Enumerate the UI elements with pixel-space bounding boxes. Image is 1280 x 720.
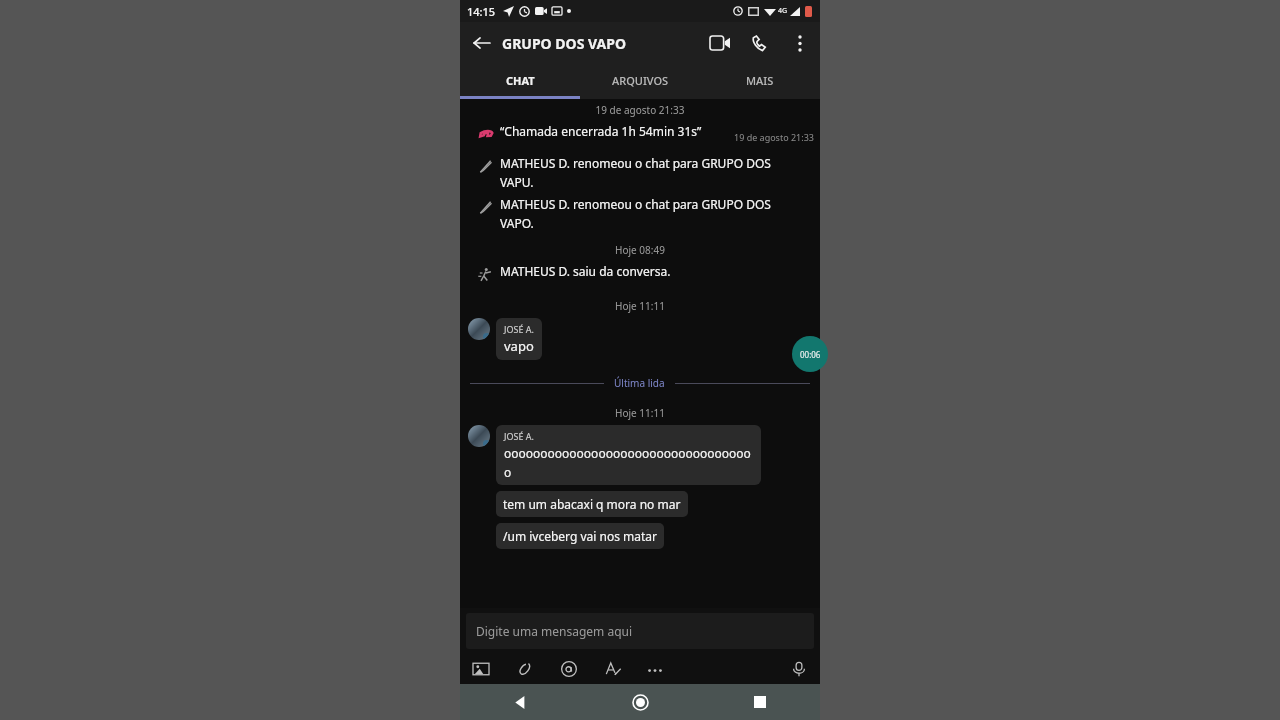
staticText: 14:15 [467,4,496,19]
staticText: 19 de agosto 21:33 [460,103,820,117]
button[interactable]: Voltar [460,22,502,64]
staticText: Hoje 11:11 [460,299,820,313]
staticText: tem um abacaxi q mora no mar [503,496,681,512]
button[interactable]: Mencionar [558,658,580,680]
button[interactable]: Chamada em andamento [792,336,828,372]
button[interactable]: CHAT [460,64,580,96]
button[interactable]: tem um abacaxi q mora no mar [496,491,688,517]
button[interactable]: MAIS [700,64,820,96]
staticText: “Chamada encerrada 1h 54min 31s” [500,123,720,139]
staticText: /um ivceberg vai nos matar [503,528,657,544]
staticText: 19 de agosto 21:33 [734,131,814,143]
staticText: MATHEUS D. saiu da conversa. [500,263,671,279]
button[interactable]: JOSÉ A. [496,425,761,485]
button[interactable]: Recentes [700,684,820,720]
staticText: ooooooooooooooooooooooooooooooooooo [504,445,753,480]
staticText: MATHEUS D. renomeou o chat para GRUPO DO… [500,155,790,190]
staticText: GRUPO DOS VAPO [502,34,626,53]
button[interactable]: JOSÉ A. [496,318,542,360]
button[interactable]: Chamada de voz [740,23,780,63]
button[interactable]: Digite uma mensagem aqui [466,613,814,649]
button[interactable]: Anexo [514,658,536,680]
button[interactable]: ARQUIVOS [580,64,700,96]
staticText: 4G [778,6,788,16]
staticText: JOSÉ A. [504,430,534,442]
button[interactable]: Imagem [470,658,492,680]
button[interactable]: /um ivceberg vai nos matar [496,523,664,549]
button[interactable]: Voltar [460,684,580,720]
button[interactable]: Início [580,684,700,720]
staticText: Hoje 08:49 [460,243,820,257]
button[interactable]: Gravar áudio [788,658,810,680]
button[interactable]: Foto de JOSÉ A. [468,318,490,340]
button[interactable]: Foto de JOSÉ A. [468,425,490,447]
staticText: MAIS [746,73,774,88]
staticText: Digite uma mensagem aqui [476,623,633,639]
staticText: Hoje 11:11 [460,406,820,420]
staticText: Última lida [614,376,665,390]
button[interactable]: Mais opções [780,23,820,63]
button[interactable]: Mais [644,658,666,680]
button[interactable]: Formatar [602,658,624,680]
staticText: MATHEUS D. renomeou o chat para GRUPO DO… [500,196,790,231]
staticText: vapo [504,337,534,355]
button[interactable]: Chamada de vídeo [700,23,740,63]
staticText: 00:06 [800,349,821,360]
staticText: CHAT [506,73,535,88]
staticText: ARQUIVOS [612,73,669,88]
staticText: JOSÉ A. [504,323,534,335]
